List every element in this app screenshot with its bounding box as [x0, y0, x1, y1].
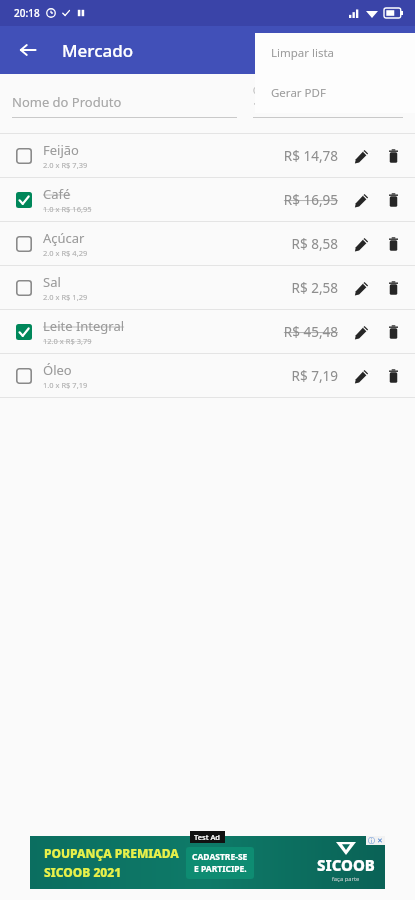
- button[interactable]: Toggle Sal: [9, 273, 39, 303]
- staticText: R$ 14,78: [283, 147, 338, 165]
- button[interactable]: Toggle Óleo: [9, 361, 39, 391]
- staticText: CADASTRE-SE: [192, 851, 248, 863]
- staticText: 2.0 x R$ 4,29: [43, 248, 88, 258]
- staticText: Café: [43, 185, 71, 203]
- staticText: SICOOB: [317, 855, 375, 875]
- button[interactable]: Edit Óleo: [348, 363, 374, 389]
- button[interactable]: Delete Sal: [380, 275, 406, 301]
- button[interactable]: Edit Leite Integral: [348, 319, 374, 345]
- button[interactable]: Toggle Café: [9, 185, 39, 215]
- staticText: 20:18: [14, 6, 40, 20]
- button[interactable]: Toggle Feijão: [9, 141, 39, 171]
- staticText: SICOOB 2021: [44, 864, 122, 880]
- staticText: R$ 7,19: [291, 367, 338, 385]
- staticText: ✕: [377, 837, 383, 845]
- button[interactable]: Toggle Óleo: [0, 354, 415, 397]
- staticText: Gerar PDF: [271, 85, 326, 101]
- staticText: Nome do Produto: [12, 93, 122, 111]
- button[interactable]: Edit Feijão: [348, 143, 374, 169]
- button[interactable]: Toggle Açúcar: [0, 222, 415, 265]
- button[interactable]: Toggle Café: [0, 178, 415, 221]
- button[interactable]: Toggle Leite Integral: [9, 317, 39, 347]
- button[interactable]: Gerar PDF: [255, 73, 415, 113]
- staticText: Leite Integral: [43, 317, 125, 335]
- button[interactable]: Delete Feijão: [380, 143, 406, 169]
- button[interactable]: Delete Café: [380, 187, 406, 213]
- staticText: faça parte: [332, 875, 360, 883]
- button[interactable]: Edit Café: [348, 187, 374, 213]
- button[interactable]: Back: [8, 30, 48, 70]
- staticText: Açúcar: [43, 229, 85, 247]
- staticText: Quantidade: [253, 85, 298, 96]
- staticText: R$ 45,48: [283, 323, 338, 341]
- button[interactable]: POUPANÇA PREMIADA: [30, 836, 385, 889]
- staticText: E PARTICIPE.: [194, 863, 247, 875]
- staticText: POUPANÇA PREMIADA: [44, 845, 179, 861]
- button[interactable]: Toggle Leite Integral: [0, 310, 415, 353]
- staticText: Test Ad: [194, 832, 221, 842]
- staticText: 1.0 x R$ 16,95: [43, 204, 92, 214]
- staticText: 2.0 x R$ 1,29: [43, 292, 88, 302]
- button[interactable]: Edit Sal: [348, 275, 374, 301]
- button[interactable]: Toggle Feijão: [0, 134, 415, 177]
- button[interactable]: Toggle Sal: [0, 266, 415, 309]
- staticText: 1: [253, 98, 260, 114]
- button[interactable]: Close ad: [368, 836, 383, 845]
- button[interactable]: Delete Óleo: [380, 363, 406, 389]
- button[interactable]: Delete Leite Integral: [380, 319, 406, 345]
- staticText: R$ 16,95: [283, 191, 338, 209]
- button[interactable]: Toggle Açúcar: [9, 229, 39, 259]
- staticText: Óleo: [43, 361, 72, 379]
- staticText: R$ 8,58: [291, 235, 338, 253]
- staticText: Sal: [43, 273, 61, 291]
- staticText: ⓘ: [368, 836, 375, 845]
- staticText: Limpar lista: [271, 45, 335, 61]
- staticText: R$ 2,58: [291, 279, 338, 297]
- staticText: 1.0 x R$ 7,19: [43, 380, 88, 390]
- button[interactable]: Delete Açúcar: [380, 231, 406, 257]
- staticText: Mercado: [62, 39, 134, 62]
- staticText: 12.0 x R$ 3,79: [43, 336, 92, 346]
- staticText: Feijão: [43, 141, 79, 159]
- button[interactable]: Limpar lista: [255, 33, 415, 73]
- button[interactable]: Edit Açúcar: [348, 231, 374, 257]
- staticText: 2.0 x R$ 7,39: [43, 160, 88, 170]
